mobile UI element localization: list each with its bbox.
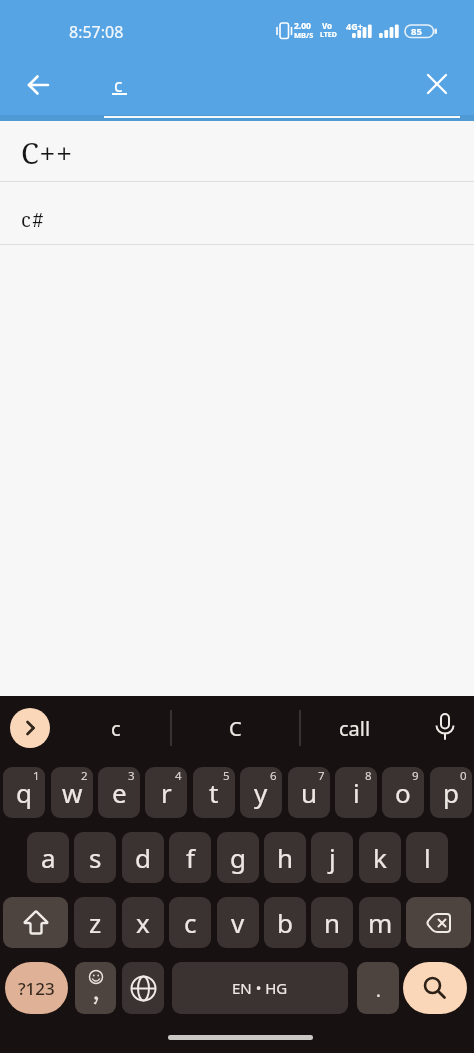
staticText: 8 xyxy=(365,768,372,784)
button[interactable]: C xyxy=(195,708,275,748)
button[interactable]: v xyxy=(217,897,259,948)
button[interactable]: . xyxy=(357,962,399,1014)
button[interactable]: b xyxy=(264,897,306,948)
button[interactable]: c xyxy=(76,708,156,748)
staticText: 9 xyxy=(412,768,419,784)
staticText: C xyxy=(229,715,242,742)
staticText: 4 xyxy=(175,768,182,784)
button[interactable]: o xyxy=(382,767,424,818)
button[interactable]: y xyxy=(240,767,282,818)
button[interactable]: q xyxy=(3,767,45,818)
button[interactable]: call xyxy=(315,708,395,748)
staticText: k xyxy=(373,840,387,875)
button[interactable] xyxy=(3,897,68,948)
staticText: . xyxy=(376,978,381,1003)
staticText: t xyxy=(209,775,219,810)
staticText: 5 xyxy=(223,768,230,784)
staticText: x xyxy=(136,905,150,940)
button[interactable] xyxy=(406,897,471,948)
button[interactable]: x xyxy=(122,897,164,948)
staticText: 4G+ xyxy=(346,20,363,32)
button[interactable] xyxy=(75,962,116,1014)
button[interactable] xyxy=(122,962,164,1014)
staticText: e xyxy=(112,775,127,810)
staticText: s xyxy=(89,840,102,875)
button[interactable]: z xyxy=(74,897,116,948)
staticText: l xyxy=(424,840,431,875)
staticText: LTED xyxy=(320,30,337,40)
button[interactable]: e xyxy=(98,767,140,818)
staticText: c xyxy=(111,715,121,742)
button[interactable]: C++ xyxy=(0,121,474,181)
staticText: EN • HG xyxy=(232,978,288,998)
staticText: b xyxy=(277,905,293,940)
staticText: z xyxy=(89,905,102,940)
button[interactable]: i xyxy=(335,767,377,818)
button[interactable]: k xyxy=(359,832,401,883)
staticText: p xyxy=(443,775,459,810)
button[interactable]: t xyxy=(193,767,235,818)
button[interactable]: h xyxy=(264,832,306,883)
staticText: 7 xyxy=(318,768,325,784)
staticText: i xyxy=(353,775,360,810)
staticText: n xyxy=(324,905,341,940)
button[interactable]: j xyxy=(311,832,353,883)
button[interactable] xyxy=(403,962,467,1014)
staticText: a xyxy=(41,840,56,875)
staticText: g xyxy=(230,840,246,875)
staticText: h xyxy=(277,840,294,875)
staticText: ?123 xyxy=(18,977,55,1000)
staticText: c xyxy=(114,73,123,97)
button[interactable]: g xyxy=(217,832,259,883)
staticText: 2 xyxy=(81,768,88,784)
staticText: call xyxy=(339,715,371,742)
staticText: 3 xyxy=(128,768,135,784)
button[interactable]: r xyxy=(145,767,187,818)
button[interactable]: ?123 xyxy=(5,962,68,1014)
staticText: c xyxy=(184,905,197,940)
staticText: Vo xyxy=(322,20,333,31)
button[interactable]: EN • HG xyxy=(172,962,348,1014)
button[interactable]: l xyxy=(406,832,448,883)
button[interactable]: p xyxy=(430,767,472,818)
staticText: q xyxy=(16,775,32,810)
button[interactable]: w xyxy=(51,767,93,818)
staticText: j xyxy=(329,840,336,875)
staticText: r xyxy=(161,775,172,810)
staticText: d xyxy=(135,840,151,875)
button[interactable]: m xyxy=(359,897,401,948)
staticText: o xyxy=(395,775,411,810)
staticText: y xyxy=(254,775,268,810)
staticText: 8:57:08 xyxy=(69,21,124,43)
button[interactable] xyxy=(425,708,465,748)
staticText: MB/S xyxy=(294,30,314,40)
button[interactable] xyxy=(10,708,50,748)
button[interactable]: s xyxy=(74,832,116,883)
staticText: m xyxy=(368,905,393,940)
button[interactable]: d xyxy=(122,832,164,883)
button[interactable]: n xyxy=(311,897,353,948)
button[interactable]: f xyxy=(169,832,211,883)
staticText: 2.00 xyxy=(294,20,311,32)
button[interactable]: c# xyxy=(0,182,474,244)
staticText: C++ xyxy=(21,133,73,172)
staticText: f xyxy=(186,840,195,875)
button[interactable]: c xyxy=(169,897,211,948)
staticText: u xyxy=(301,775,318,810)
staticText: w xyxy=(62,775,83,810)
button[interactable]: u xyxy=(288,767,330,818)
staticText: c# xyxy=(21,206,46,233)
staticText: v xyxy=(231,905,245,940)
staticText: 6 xyxy=(270,768,277,784)
button[interactable]: a xyxy=(27,832,69,883)
button[interactable] xyxy=(14,61,62,109)
button[interactable] xyxy=(413,60,461,108)
staticText: 0 xyxy=(460,768,467,784)
staticText: 1 xyxy=(33,768,40,784)
staticText: 85 xyxy=(411,25,422,38)
